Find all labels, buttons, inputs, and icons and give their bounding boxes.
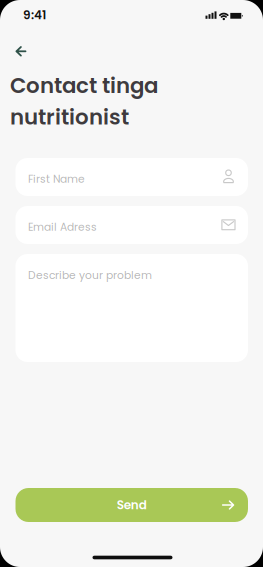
button[interactable]: Email Adress [15,206,248,244]
staticText: Send [117,497,147,513]
button[interactable]: Describe your problem [15,254,248,362]
button[interactable]: First Name [15,158,248,196]
button[interactable]: Send [15,488,248,522]
button[interactable]: Back [9,38,33,62]
staticText: nutritionist [10,102,129,131]
staticText: Contact tinga [10,71,158,100]
staticText: 9:41 [23,7,46,23]
staticText: Describe your problem [28,268,152,283]
staticText: First Name [28,172,85,186]
staticText: Email Adress [28,220,97,234]
